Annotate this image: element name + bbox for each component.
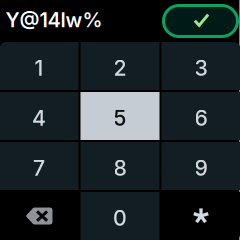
staticText: 9 bbox=[194, 155, 207, 181]
button[interactable]: 1 bbox=[0, 42, 78, 90]
button[interactable]: 5 bbox=[80, 92, 159, 140]
staticText: 8 bbox=[113, 155, 126, 181]
button[interactable]: 2 bbox=[80, 42, 159, 90]
staticText: 2 bbox=[113, 55, 126, 81]
button[interactable]: 9 bbox=[161, 142, 240, 190]
staticText: 3 bbox=[194, 55, 207, 81]
staticText: 6 bbox=[194, 105, 207, 131]
staticText: 7 bbox=[33, 155, 45, 181]
staticText: 1 bbox=[34, 55, 43, 81]
button[interactable]: Confirm passcode bbox=[163, 5, 237, 36]
button[interactable]: 7 bbox=[0, 142, 78, 190]
staticText: Y@14lw% bbox=[5, 8, 102, 32]
button[interactable]: 3 bbox=[161, 42, 240, 90]
button[interactable]: 4 bbox=[0, 92, 78, 140]
button[interactable]: 0 bbox=[80, 192, 159, 240]
button[interactable]: Delete bbox=[0, 192, 78, 240]
staticText: 0 bbox=[113, 205, 127, 231]
button[interactable]: 8 bbox=[80, 142, 159, 190]
staticText: 5 bbox=[113, 105, 126, 131]
button[interactable]: 6 bbox=[161, 92, 240, 140]
staticText: 4 bbox=[32, 105, 46, 131]
button[interactable]: Asterisk bbox=[161, 192, 240, 240]
